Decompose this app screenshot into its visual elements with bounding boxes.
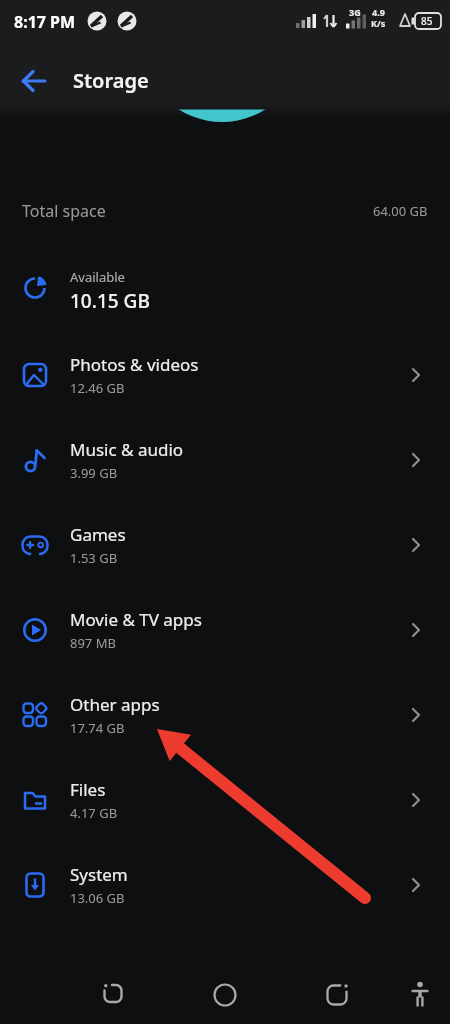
button[interactable]: Photos & videos [0,332,450,417]
button[interactable]: Files [0,757,450,842]
button[interactable]: Available [0,258,450,324]
staticText: Available [70,268,125,286]
staticText: Music & audio [70,438,184,461]
staticText: 17.74 GB [70,719,125,737]
staticText: 4.9 [372,6,385,18]
staticText: 3.99 GB [70,464,118,482]
button[interactable] [313,971,361,1019]
button[interactable]: Music & audio [0,417,450,502]
staticText: Storage [73,67,149,94]
button[interactable]: Games [0,502,450,587]
staticText: 897 MB [70,634,116,652]
staticText: 4.17 GB [70,804,118,822]
button[interactable]: System [0,842,450,927]
staticText: 13.06 GB [70,889,125,907]
button[interactable] [201,971,249,1019]
staticText: K/s [371,17,386,29]
button[interactable] [89,969,137,1017]
button[interactable] [14,62,54,102]
staticText: Files [70,778,106,801]
staticText: 3G [349,6,361,18]
staticText: Games [70,523,126,546]
staticText: 12.46 GB [70,379,125,397]
button[interactable] [396,971,444,1019]
staticText: Photos & videos [70,353,199,376]
staticText: 1.53 GB [70,549,118,567]
staticText: Movie & TV apps [70,608,202,631]
staticText: System [70,863,128,886]
button[interactable]: Other apps [0,672,450,757]
staticText: 8:17 PM [14,11,76,33]
staticText: 64.00 GB [373,202,428,220]
button[interactable]: Movie & TV apps [0,587,450,672]
staticText: Total space [22,200,106,222]
staticText: 85 [421,14,433,28]
staticText: Other apps [70,693,160,716]
staticText: 10.15 GB [70,288,150,314]
